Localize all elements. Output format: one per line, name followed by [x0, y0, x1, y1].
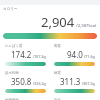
staticText: カロリー [3, 7, 18, 12]
staticText: 2,904 [41, 13, 75, 31]
staticText: 174.2 [11, 49, 32, 60]
staticText: 311.3 [60, 76, 81, 87]
button[interactable]: 塩分 [52, 98, 97, 100]
staticText: 350.8 [11, 76, 32, 87]
staticText: 塩分 [54, 98, 61, 100]
staticText: 炭水化物 [5, 71, 19, 75]
staticText: /307.2g [81, 81, 95, 86]
button[interactable]: 脂質 [52, 44, 97, 66]
staticText: 94.0 [67, 49, 83, 60]
staticText: /107.4g [32, 54, 46, 59]
staticText: /2,387kcal [75, 23, 97, 29]
staticText: 脂質 [54, 44, 61, 48]
button[interactable]: 糖質 [52, 71, 97, 93]
staticText: 糖質 [54, 71, 61, 75]
staticText: /326.2g [32, 81, 46, 86]
staticText: たんぱく質 [5, 44, 23, 48]
button[interactable]: 食物繊維 [3, 98, 48, 100]
button[interactable]: 炭水化物 [3, 71, 48, 93]
button[interactable]: たんぱく質 [3, 44, 48, 66]
staticText: 食物繊維 [5, 98, 19, 100]
staticText: /71.6g [83, 54, 95, 59]
